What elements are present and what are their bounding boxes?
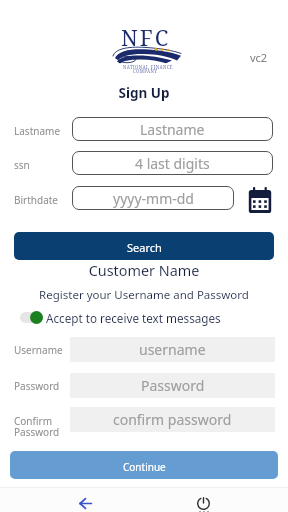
staticText: Birthdate bbox=[14, 193, 59, 207]
staticText: Lastname bbox=[14, 124, 61, 138]
button[interactable]: yyyy-mm-dd bbox=[72, 186, 234, 210]
button[interactable]: Power bbox=[179, 486, 227, 512]
staticText: NATIONAL FINANCE bbox=[123, 64, 173, 70]
staticText: vc2 bbox=[250, 50, 268, 65]
staticText: COMPANY bbox=[133, 68, 158, 74]
staticText: Customer Name bbox=[0, 261, 288, 281]
button[interactable]: confirm password bbox=[70, 407, 275, 432]
staticText: NFC bbox=[121, 22, 171, 52]
button[interactable]: Search bbox=[14, 232, 274, 260]
staticText: username bbox=[139, 340, 206, 359]
button[interactable]: Pick date bbox=[248, 187, 272, 213]
staticText: 4 last digits bbox=[135, 154, 210, 173]
staticText: Sign Up bbox=[0, 84, 288, 102]
staticText: Accept to receive text messages bbox=[46, 310, 221, 326]
staticText: Continue bbox=[123, 460, 166, 474]
button[interactable]: Accept to receive text messages bbox=[20, 308, 221, 327]
staticText: Password bbox=[141, 376, 205, 395]
button[interactable]: username bbox=[70, 337, 275, 362]
button[interactable]: Password bbox=[70, 373, 275, 398]
staticText: confirm password bbox=[113, 410, 232, 429]
staticText: Search bbox=[127, 240, 162, 255]
button[interactable]: Continue bbox=[10, 451, 278, 479]
staticText: Register your Username and Password bbox=[0, 287, 288, 303]
staticText: Password bbox=[14, 379, 60, 393]
button[interactable]: 4 last digits bbox=[72, 151, 273, 175]
staticText: ssn bbox=[14, 158, 30, 172]
button[interactable]: Lastname bbox=[72, 117, 273, 141]
staticText: Lastname bbox=[140, 120, 205, 139]
button[interactable]: Back bbox=[61, 486, 109, 512]
staticText: Username bbox=[14, 343, 63, 357]
staticText: Confirm Password bbox=[14, 414, 60, 439]
staticText: yyyy-mm-dd bbox=[113, 189, 194, 208]
